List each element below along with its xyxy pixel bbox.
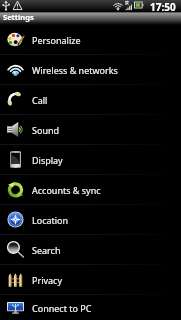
button[interactable]: Display — [0, 145, 181, 174]
button[interactable]: Connect to PC — [0, 295, 181, 320]
button[interactable]: Call — [0, 85, 181, 114]
staticText: Search — [32, 244, 61, 256]
button[interactable]: Accounts & sync — [0, 175, 181, 204]
staticText: Privacy — [32, 274, 63, 286]
button[interactable]: Privacy — [0, 265, 181, 294]
button[interactable]: Sound — [0, 115, 181, 144]
staticText: Call — [32, 94, 48, 106]
staticText: Sound — [32, 124, 60, 136]
button[interactable]: Location — [0, 205, 181, 234]
staticText: Accounts & sync — [32, 184, 101, 196]
button[interactable]: Personalize — [0, 25, 181, 54]
button[interactable]: Wireless & networks — [0, 55, 181, 84]
staticText: Wireless & networks — [32, 64, 118, 76]
button[interactable]: Search — [0, 235, 181, 264]
staticText: Personalize — [32, 34, 81, 46]
staticText: Settings — [3, 12, 34, 22]
staticText: Connect to PC — [32, 302, 92, 314]
staticText: 17:50 — [150, 0, 176, 12]
staticText: Location — [32, 214, 69, 226]
staticText: Display — [32, 154, 63, 166]
